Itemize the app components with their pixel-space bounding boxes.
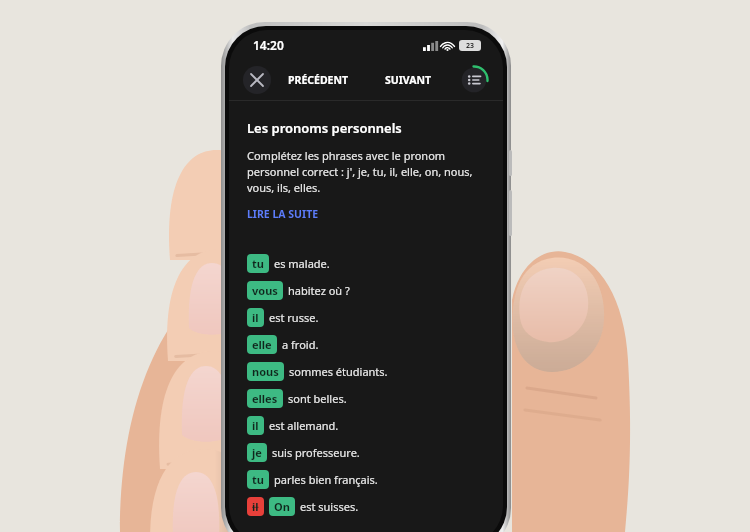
button[interactable]: tu [247,254,269,273]
button[interactable]: vous [247,281,283,300]
staticText: il [252,310,259,325]
button[interactable]: tu [247,470,269,489]
staticText: es malade. [274,256,330,271]
button[interactable]: PRÉCÉDENT [282,69,355,91]
staticText: est allemand. [269,418,339,433]
staticText: SUIVANT [385,73,432,87]
button[interactable]: il [247,308,264,327]
button[interactable]: SUIVANT [379,69,438,91]
button[interactable]: elles [247,389,283,408]
button[interactable]: Progression [459,65,489,95]
staticText: PRÉCÉDENT [288,73,349,87]
staticText: 14:20 [253,37,284,53]
staticText: il [252,499,259,514]
staticText: tu [252,472,264,487]
staticText: Les pronoms personnels [247,119,402,137]
staticText: elle [252,337,272,352]
staticText: est russe. [269,310,319,325]
staticText: On [274,499,290,514]
button[interactable]: il [247,497,264,516]
staticText: LIRE LA SUITE [247,207,319,221]
staticText: parles bien français. [274,472,378,487]
staticText: sommes étudiants. [289,364,388,379]
staticText: sont belles. [288,391,347,406]
button[interactable]: je [247,443,267,462]
staticText: habitez où ? [288,283,350,298]
button[interactable]: il [247,416,264,435]
staticText: elles [252,391,278,406]
staticText: tu [252,256,264,271]
staticText: Complétez les phrases avec le pronom per… [247,148,473,195]
staticText: nous [252,364,279,379]
staticText: il [252,418,259,433]
button[interactable]: LIRE LA SUITE [247,207,319,221]
button[interactable]: On [269,497,295,516]
staticText: 23 [466,41,475,51]
button[interactable]: Fermer [243,66,271,94]
staticText: vous [252,283,278,298]
button[interactable]: elle [247,335,277,354]
staticText: suis professeure. [272,445,360,460]
staticText: est suisses. [300,499,359,514]
button[interactable]: nous [247,362,284,381]
staticText: je [252,445,262,460]
staticText: a froid. [282,337,319,352]
